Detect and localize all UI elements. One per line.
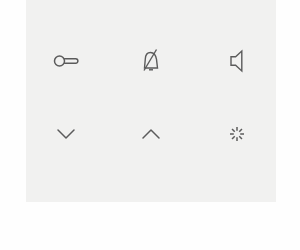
button[interactable]: Volume [215, 39, 259, 83]
button[interactable]: Mute notifications [129, 39, 173, 83]
button[interactable]: Brightness [215, 112, 259, 156]
button[interactable]: Lower [44, 112, 88, 156]
button[interactable]: Unlock [44, 39, 88, 83]
button[interactable]: Raise [129, 112, 173, 156]
